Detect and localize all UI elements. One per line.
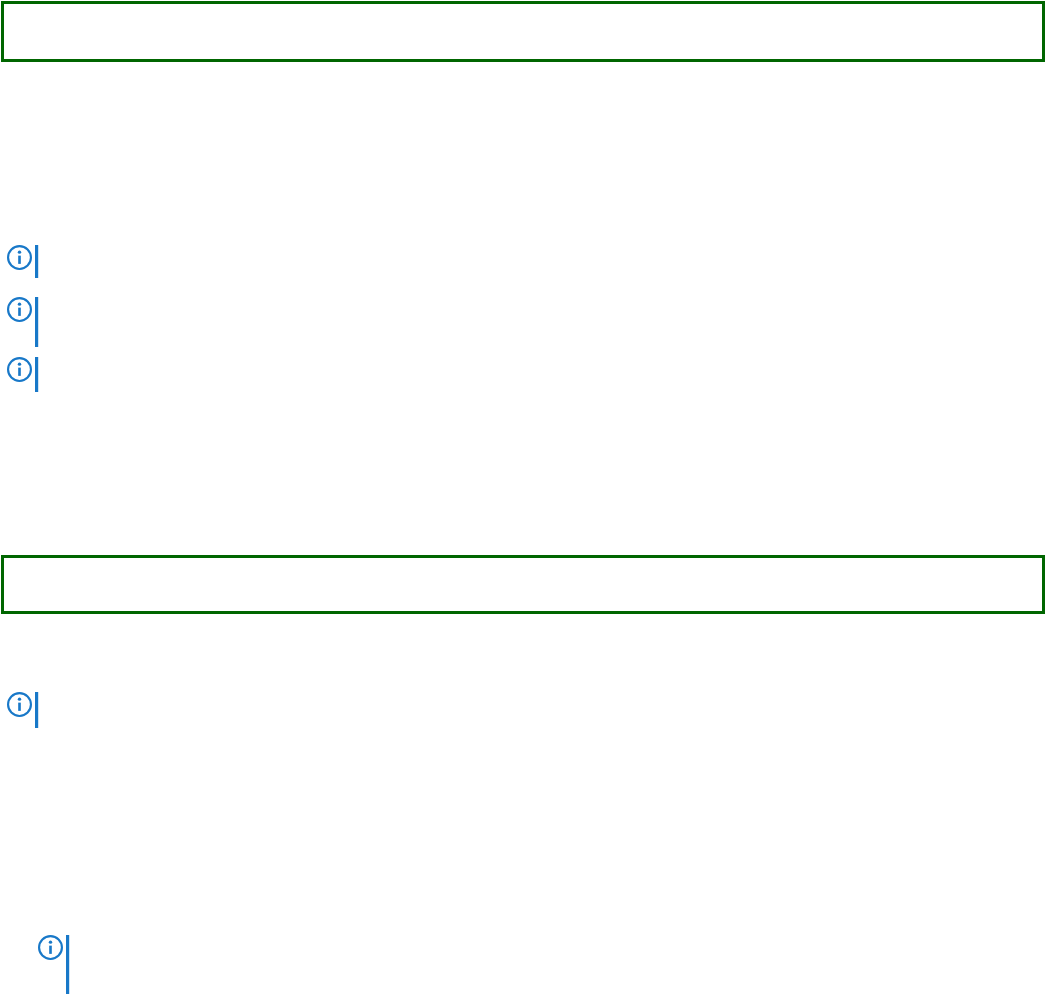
button[interactable]: Information [7, 357, 41, 392]
button[interactable]: Information [7, 297, 41, 347]
button[interactable]: Section frame [1, 1, 1045, 62]
button[interactable]: Information [7, 692, 41, 728]
button[interactable]: Information [7, 245, 41, 278]
button[interactable]: Section frame [1, 555, 1045, 614]
button[interactable]: Information [38, 935, 72, 994]
